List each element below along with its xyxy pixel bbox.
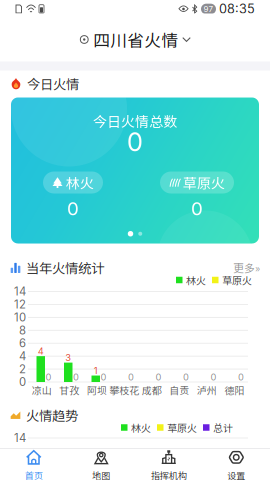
staticText: 0 <box>100 371 106 383</box>
staticText: 草原火 <box>167 420 197 435</box>
staticText: 6 <box>19 336 26 350</box>
staticText: 10 <box>14 310 26 324</box>
staticText: 0 <box>67 197 79 220</box>
staticText: 攀枝花 <box>109 383 139 397</box>
button[interactable]: 首页 <box>0 449 67 480</box>
staticText: 0 <box>45 371 51 383</box>
staticText: 草原火 <box>222 273 252 287</box>
staticText: 成都 <box>142 383 162 397</box>
staticText: 8 <box>19 323 26 337</box>
staticText: 0 <box>191 197 203 220</box>
staticText: 火情趋势 <box>26 405 78 425</box>
button[interactable]: 指挥机构 <box>135 449 202 480</box>
staticText: 凉山 <box>32 383 52 397</box>
staticText: 12 <box>14 298 26 311</box>
staticText: 14 <box>14 431 26 445</box>
staticText: 1 <box>94 365 98 376</box>
staticText: 4 <box>38 345 44 357</box>
staticText: 2 <box>19 362 26 376</box>
staticText: 更多» <box>233 260 260 275</box>
staticText: 今日火情总数 <box>93 111 177 131</box>
staticText: 0 <box>238 371 244 383</box>
staticText: 0 <box>19 375 26 389</box>
button[interactable]: 更多» <box>225 257 260 278</box>
staticText: 林火 <box>66 172 94 193</box>
staticText: 3 <box>65 352 71 363</box>
button[interactable]: 设置 <box>202 449 270 480</box>
staticText: 0 <box>128 371 134 383</box>
staticText: 0 <box>183 371 189 383</box>
staticText: 0 <box>127 127 143 157</box>
button[interactable]: 四川省火情 <box>71 22 199 56</box>
staticText: 自贡 <box>169 383 189 397</box>
staticText: 甘孜 <box>59 383 79 397</box>
staticText: 草原火 <box>183 172 225 193</box>
staticText: 当年火情统计 <box>26 258 104 277</box>
staticText: 08:35 <box>219 1 255 17</box>
staticText: 97 <box>203 4 213 14</box>
staticText: 阿坝 <box>87 383 107 397</box>
staticText: 4 <box>19 349 26 363</box>
staticText: 0 <box>73 371 79 383</box>
staticText: 四川省火情 <box>93 27 178 51</box>
staticText: 设置 <box>227 469 245 480</box>
staticText: 总计 <box>213 420 233 435</box>
staticText: 首页 <box>25 469 43 480</box>
staticText: 泸州 <box>197 383 217 397</box>
staticText: 指挥机构 <box>151 469 187 480</box>
staticText: 14 <box>14 285 26 298</box>
staticText: 0 <box>210 371 216 383</box>
staticText: 林火 <box>131 420 151 435</box>
staticText: 林火 <box>186 273 206 287</box>
staticText: 地图 <box>92 469 110 480</box>
staticText: 德阳 <box>224 383 244 397</box>
button[interactable]: 地图 <box>67 449 135 480</box>
staticText: 今日火情 <box>27 74 79 93</box>
staticText: 0 <box>155 371 161 383</box>
